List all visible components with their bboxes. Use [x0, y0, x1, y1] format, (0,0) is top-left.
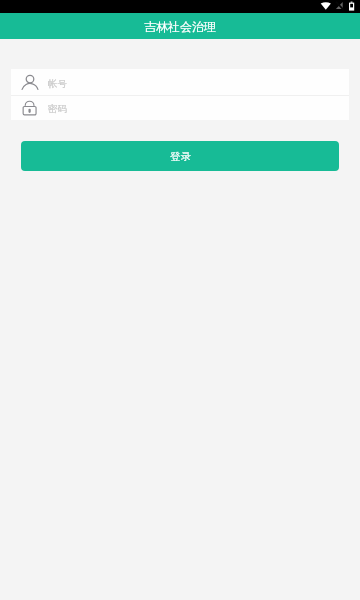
- other: Password: [22, 100, 38, 116]
- button[interactable]: Password: [11, 96, 349, 120]
- staticText: 帐号: [48, 78, 67, 90]
- staticText: 登录: [170, 150, 191, 163]
- staticText: 吉林社会治理: [144, 19, 216, 34]
- button[interactable]: 登录: [21, 141, 339, 171]
- staticText: 密码: [48, 103, 67, 115]
- button[interactable]: Account: [11, 69, 349, 95]
- other: Account: [22, 74, 38, 90]
